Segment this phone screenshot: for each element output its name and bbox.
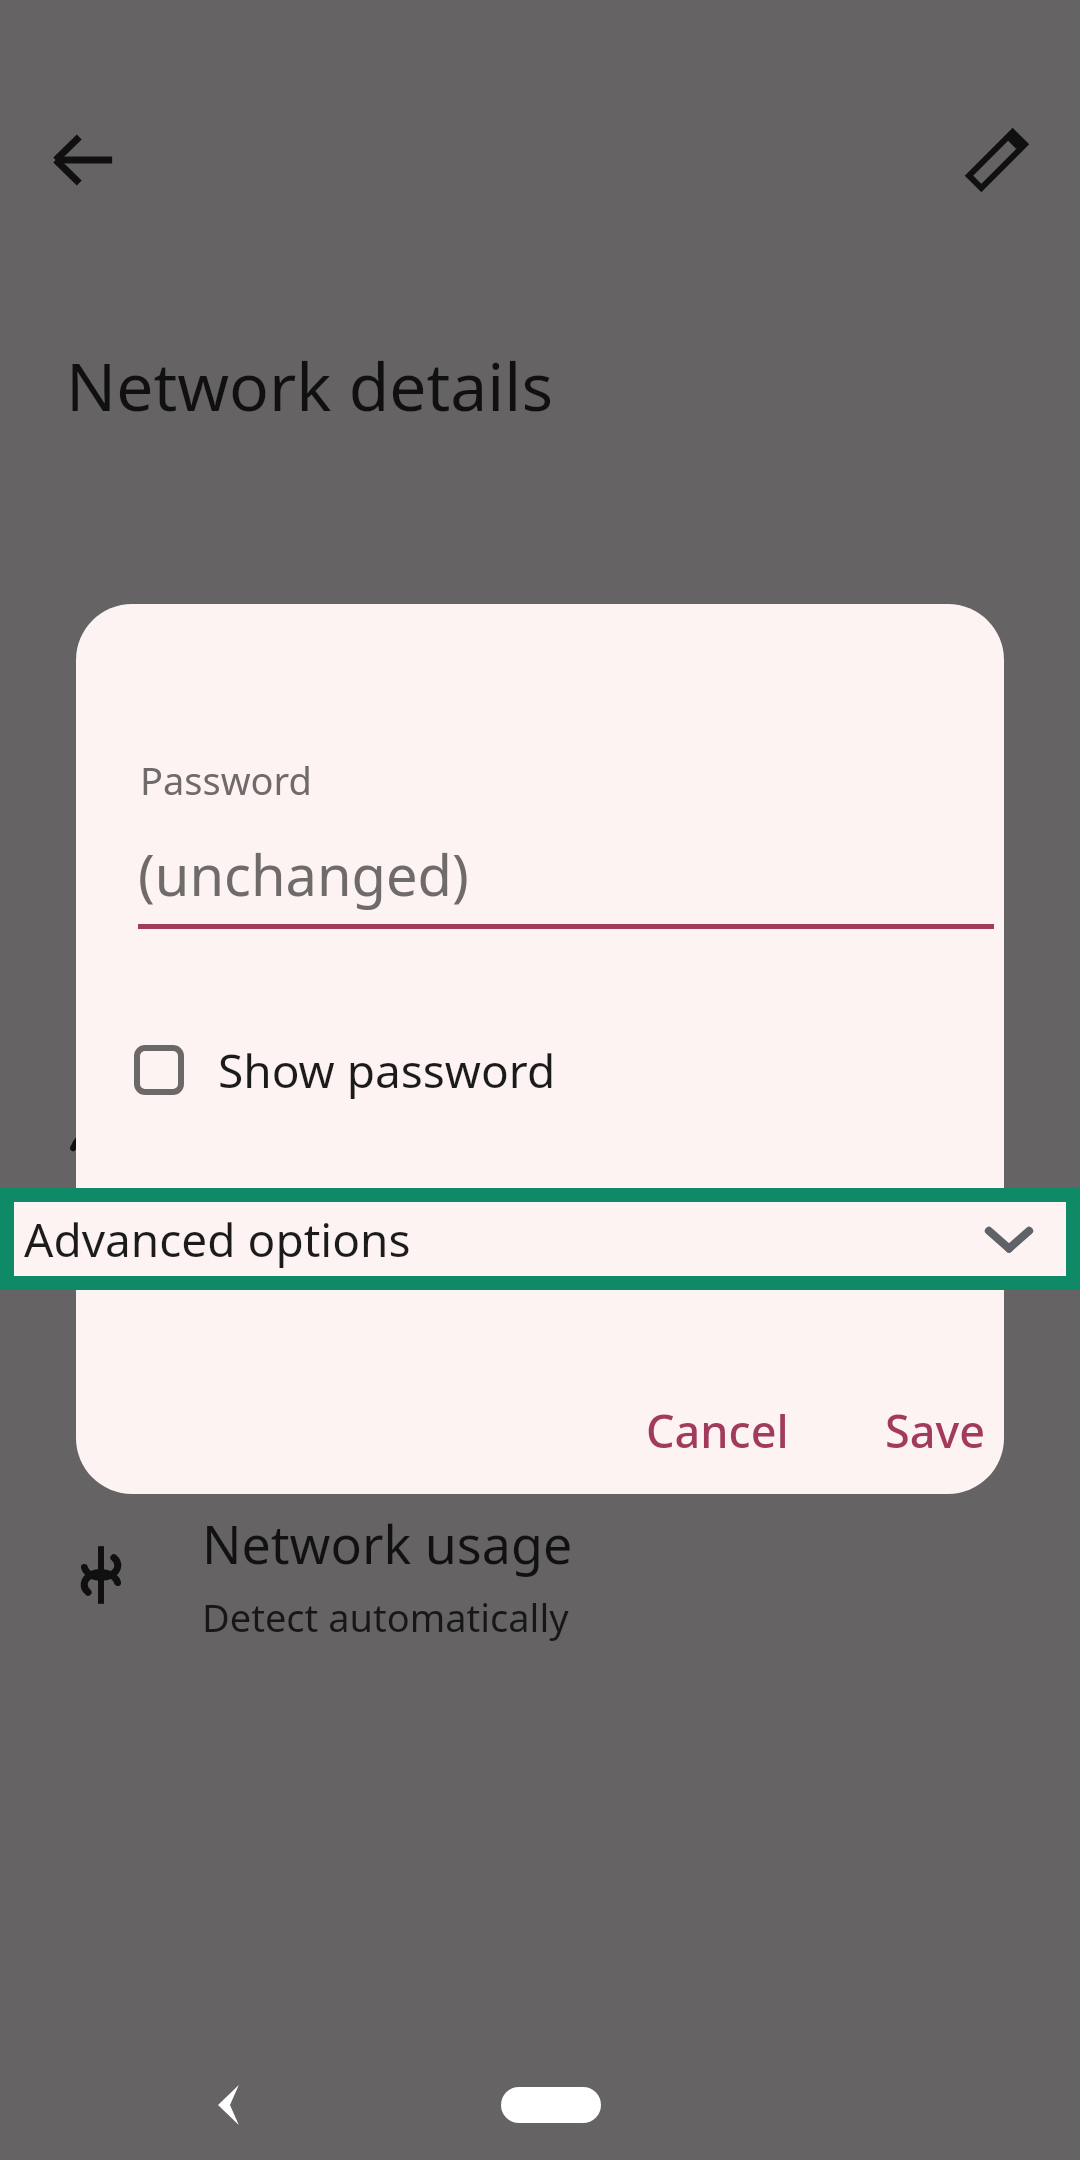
staticText: Network details bbox=[66, 340, 554, 430]
button[interactable]: Home bbox=[501, 2087, 601, 2123]
staticText: Password bbox=[140, 754, 312, 806]
button[interactable]: Show password bbox=[134, 1025, 1004, 1115]
staticText: Frequency bbox=[202, 1088, 456, 1159]
button[interactable]: Network usage bbox=[0, 1490, 1080, 1660]
staticText: 5 GHz bbox=[202, 1171, 308, 1223]
button[interactable]: Frequency bbox=[0, 1070, 1080, 1240]
staticText: Network usage bbox=[202, 1508, 573, 1579]
staticText: Save bbox=[885, 1400, 986, 1461]
staticText: Cancel bbox=[646, 1400, 789, 1461]
button[interactable]: Cancel bbox=[618, 1376, 817, 1485]
button[interactable]: Back bbox=[190, 2065, 270, 2145]
staticText: Advanced options bbox=[24, 1208, 411, 1271]
button[interactable]: Advanced options bbox=[14, 1202, 1066, 1276]
button[interactable]: Save bbox=[857, 1376, 1014, 1485]
staticText: Show password bbox=[218, 1039, 556, 1102]
button[interactable]: Security bbox=[0, 1280, 1080, 1450]
button[interactable]: Back bbox=[28, 105, 138, 215]
staticText: (unchanged) bbox=[138, 836, 469, 912]
staticText: Detect automatically bbox=[202, 1591, 569, 1643]
button[interactable]: Edit bbox=[942, 105, 1052, 215]
